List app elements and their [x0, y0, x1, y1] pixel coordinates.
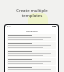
button[interactable] — [7, 66, 56, 72]
button[interactable] — [7, 58, 56, 65]
staticText: Create multiple templates — [16, 7, 48, 18]
button[interactable] — [7, 50, 56, 57]
staticText: Templates — [26, 29, 38, 32]
staticText: 9:41 — [7, 25, 11, 28]
button[interactable] — [7, 42, 56, 49]
button[interactable] — [7, 34, 56, 41]
